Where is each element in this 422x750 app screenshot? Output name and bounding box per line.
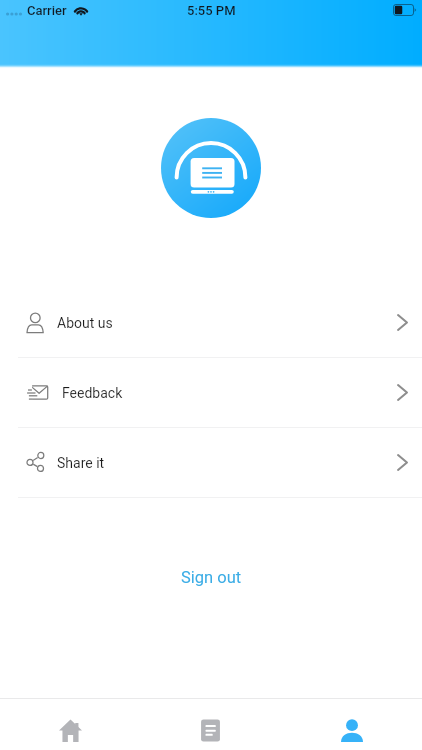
staticText: 5:55 PM <box>187 3 236 18</box>
staticText: Sign out <box>181 568 242 587</box>
button[interactable]: Documents <box>140 699 281 750</box>
button[interactable]: Home <box>0 699 140 750</box>
staticText: About us <box>57 315 113 331</box>
button[interactable]: About us <box>0 288 422 357</box>
staticText: Carrier <box>27 3 67 18</box>
staticText: Share it <box>57 455 105 471</box>
button[interactable]: Feedback <box>0 358 422 427</box>
button[interactable]: Profile <box>281 699 422 750</box>
button[interactable]: Sign out <box>0 558 422 596</box>
staticText: Feedback <box>62 385 123 401</box>
button[interactable]: Share it <box>0 428 422 497</box>
